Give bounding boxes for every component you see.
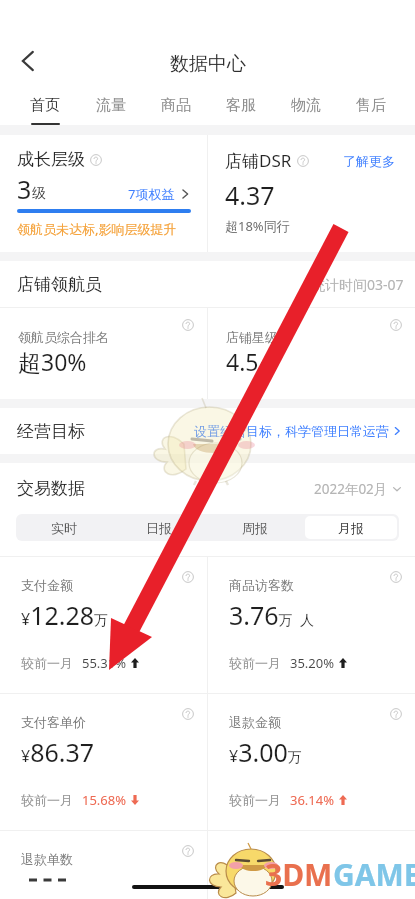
staticText: 级 [32, 185, 46, 203]
staticText: 物流 [291, 96, 321, 115]
button[interactable]: 退款金额 [208, 694, 415, 830]
staticText: 实时 [51, 520, 77, 536]
staticText: 超18%同行 [225, 217, 290, 235]
staticText: 月报 [338, 520, 364, 536]
staticText: 35.20% [290, 654, 335, 672]
staticText: GAME [333, 854, 415, 895]
staticText: 星 [259, 359, 271, 374]
staticText: ¥3.00万 [229, 735, 302, 769]
button[interactable]: 7项权益 [128, 185, 191, 206]
staticText: 3.76万 人 [229, 598, 314, 632]
staticText: 退款单数 [21, 851, 73, 867]
staticText: 较前一月 [229, 792, 281, 808]
button[interactable]: 商品访客数 [208, 557, 415, 693]
staticText: 商品访客数 [229, 577, 294, 593]
staticText: 7项权益 [128, 185, 175, 203]
staticText: 退款金额 [229, 714, 281, 730]
staticText: 支付金额 [21, 577, 73, 593]
button[interactable]: 月报 [305, 516, 397, 539]
button[interactable]: 日报 [113, 516, 205, 539]
button[interactable]: 首页 [12, 90, 78, 125]
staticText: 较前一月 [21, 655, 73, 671]
button[interactable]: 流量 [78, 90, 143, 125]
staticText: 店铺星级 [226, 329, 278, 345]
button[interactable]: 周报 [209, 516, 301, 539]
staticText: 售后 [356, 96, 386, 115]
button[interactable]: 实时 [18, 516, 109, 539]
staticText: 流量 [96, 96, 126, 115]
staticText: 55.31% [82, 654, 127, 672]
staticText: 4.37 [225, 178, 275, 212]
button[interactable]: 客服 [208, 90, 273, 125]
button[interactable]: 2022年02月 [314, 480, 402, 498]
button[interactable]: 店铺星级 [208, 308, 415, 399]
staticText: 周报 [242, 520, 268, 536]
button[interactable]: 领航员综合排名 [0, 308, 207, 399]
staticText: ¥12.28万 [21, 598, 109, 632]
staticText: 领航员未达标,影响层级提升 [17, 220, 177, 238]
staticText: 较前一月 [229, 655, 281, 671]
staticText: 店铺领航员 [17, 274, 102, 295]
button[interactable]: 物流 [273, 90, 338, 125]
button[interactable]: 商品 [143, 90, 208, 125]
staticText: 15.68% [82, 791, 127, 809]
staticText: 首页 [30, 96, 60, 115]
staticText: 设置经营目标，科学管理日常运营 [194, 423, 389, 439]
staticText: 超30% [18, 346, 87, 377]
staticText: 经营目标 [17, 421, 85, 442]
staticText: 交易数据 [17, 478, 85, 499]
staticText: 支付客单价 [21, 714, 86, 730]
staticText: 商品 [161, 96, 191, 115]
staticText: 日报 [146, 520, 172, 536]
button[interactable]: 退款单数 [0, 831, 207, 899]
button[interactable]: Back [12, 44, 46, 78]
staticText: 3DM [265, 854, 333, 895]
staticText: ¥86.37 [21, 735, 95, 769]
staticText: 领航员综合排名 [18, 329, 109, 345]
staticText: 较前一月 [21, 792, 73, 808]
staticText: 36.14% [290, 791, 335, 809]
staticText: 4.5 [226, 346, 259, 377]
staticText: 3 [17, 172, 32, 206]
staticText: 客服 [226, 96, 256, 115]
button[interactable]: 售后 [338, 90, 403, 125]
staticText: 2022年02月 [314, 480, 388, 498]
staticText: 店铺DSR [225, 149, 292, 172]
staticText: 统计时间03-07 [311, 275, 404, 294]
staticText: 成长层级 [17, 149, 85, 170]
button[interactable]: 了解更多 [343, 153, 395, 169]
staticText: 数据中心 [170, 52, 246, 76]
button[interactable]: 设置经营目标，科学管理日常运营 [194, 423, 402, 439]
button[interactable]: 支付金额 [0, 557, 207, 693]
button[interactable]: 支付客单价 [0, 694, 207, 830]
